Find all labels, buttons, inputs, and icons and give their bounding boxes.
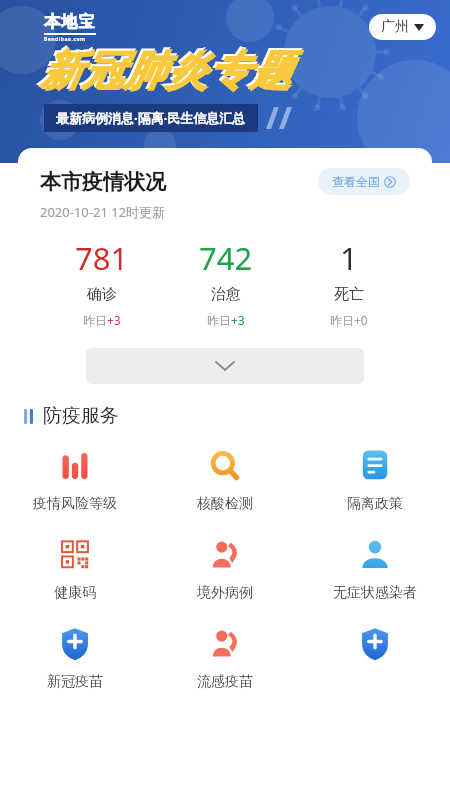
staticText: 昨日+3 — [83, 312, 121, 328]
staticText: 隔离政策 — [347, 495, 403, 513]
button[interactable]: 疫苗 — [300, 614, 450, 704]
staticText: 无症状感染者 — [333, 584, 417, 602]
staticText: 确诊 — [87, 285, 117, 304]
staticText: 本地宝 — [44, 12, 95, 32]
staticText: 防疫服务 — [43, 404, 119, 428]
staticText: 2020-10-21 12时更新 — [40, 203, 166, 221]
button[interactable]: 隔离政策 — [300, 436, 450, 525]
staticText: 境外病例 — [197, 584, 253, 602]
staticText: 治愈 — [211, 285, 241, 304]
staticText: 死亡 — [334, 285, 364, 304]
staticText: 疫情风险等级 — [33, 495, 117, 513]
staticText: 最新病例消息·隔离·民生信息汇总 — [56, 109, 246, 127]
button[interactable]: 展开更多 — [86, 348, 364, 384]
staticText: 本市疫情状况 — [40, 169, 166, 195]
staticText: Bendibao.com — [44, 36, 86, 43]
button[interactable]: 无症状感染者 — [300, 525, 450, 614]
staticText: 昨日+0 — [330, 312, 368, 328]
staticText: 流感疫苗 — [197, 673, 253, 691]
button[interactable]: 流感疫苗 — [150, 614, 300, 703]
staticText: 新冠肺炎专题 — [38, 44, 290, 96]
staticText: 1 — [340, 237, 358, 279]
staticText: 昨日+3 — [207, 312, 245, 328]
button[interactable]: 新冠疫苗 — [0, 614, 150, 703]
button[interactable]: 健康码 — [0, 525, 150, 614]
button[interactable]: 查看全国 — [318, 168, 410, 195]
staticText: 查看全国 — [332, 174, 380, 189]
staticText: 健康码 — [54, 584, 96, 602]
staticText: 新冠肺炎专题 — [40, 46, 292, 98]
staticText: 新冠疫苗 — [47, 673, 103, 691]
button[interactable]: 疫情风险等级 — [0, 436, 150, 525]
button[interactable]: 境外病例 — [150, 525, 300, 614]
button[interactable]: 核酸检测 — [150, 436, 300, 525]
staticText: 742 — [199, 237, 253, 279]
staticText: 781 — [75, 237, 129, 279]
staticText: 广州 — [381, 18, 409, 36]
button[interactable]: 广州 — [369, 14, 436, 40]
staticText: 核酸检测 — [197, 495, 253, 513]
